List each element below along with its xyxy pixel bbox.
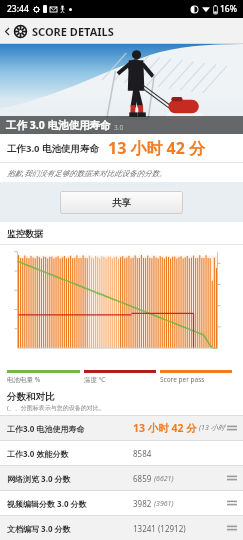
- staticText: (、、分图标表示与您的设备的对比。: [7, 404, 105, 412]
- staticText: 抱歉,我们没有足够的数据来对比此设备的分数。: [7, 168, 167, 178]
- staticText: 3.0: [114, 123, 124, 132]
- button[interactable]: 工作3.0 效能分数: [0, 441, 243, 465]
- staticText: 文档编写 3.0 分数: [7, 523, 71, 534]
- staticText: 工作 3.0 电池使用寿命: [6, 118, 111, 132]
- staticText: 工作3.0 电池使用寿命: [7, 142, 100, 155]
- staticText: 6859: [133, 473, 152, 484]
- staticText: 网络浏览 3.0 分数: [7, 473, 71, 484]
- staticText: 工作3.0 电池使用寿命: [7, 423, 85, 434]
- staticText: 13 小时 42 分: [108, 137, 206, 159]
- button[interactable]: 工作3.0 电池使用寿命: [0, 416, 243, 440]
- button[interactable]: 网络浏览 3.0 分数: [0, 466, 243, 490]
- button[interactable]: 文档编写 3.0 分数: [0, 516, 243, 540]
- staticText: 工作3.0 效能分数: [7, 448, 69, 459]
- staticText: (6621): [154, 474, 174, 484]
- staticText: Score per pass: [160, 375, 205, 384]
- button[interactable]: Back: [0, 18, 14, 44]
- staticText: 13241 (12912): [133, 523, 186, 534]
- staticText: 23:44: [7, 3, 29, 15]
- staticText: (13 小时42 分): [199, 423, 227, 433]
- staticText: 电池电量 %: [7, 375, 41, 384]
- staticText: 16%: [220, 3, 237, 15]
- staticText: 8584: [133, 448, 152, 459]
- staticText: SCORE DETAILS: [32, 24, 114, 39]
- button[interactable]: 共享: [60, 191, 183, 214]
- staticText: 视频编辑分数 3.0 分数: [7, 498, 87, 509]
- staticText: 13 小时 42 分: [133, 421, 197, 435]
- staticText: 温度 ℃: [84, 375, 106, 384]
- staticText: 共享: [112, 197, 131, 209]
- staticText: 分数和对比: [7, 391, 55, 403]
- staticText: (3961): [154, 499, 174, 509]
- button[interactable]: 视频编辑分数 3.0 分数: [0, 491, 243, 515]
- staticText: 监控数据: [7, 228, 43, 239]
- staticText: 3982: [133, 498, 152, 509]
